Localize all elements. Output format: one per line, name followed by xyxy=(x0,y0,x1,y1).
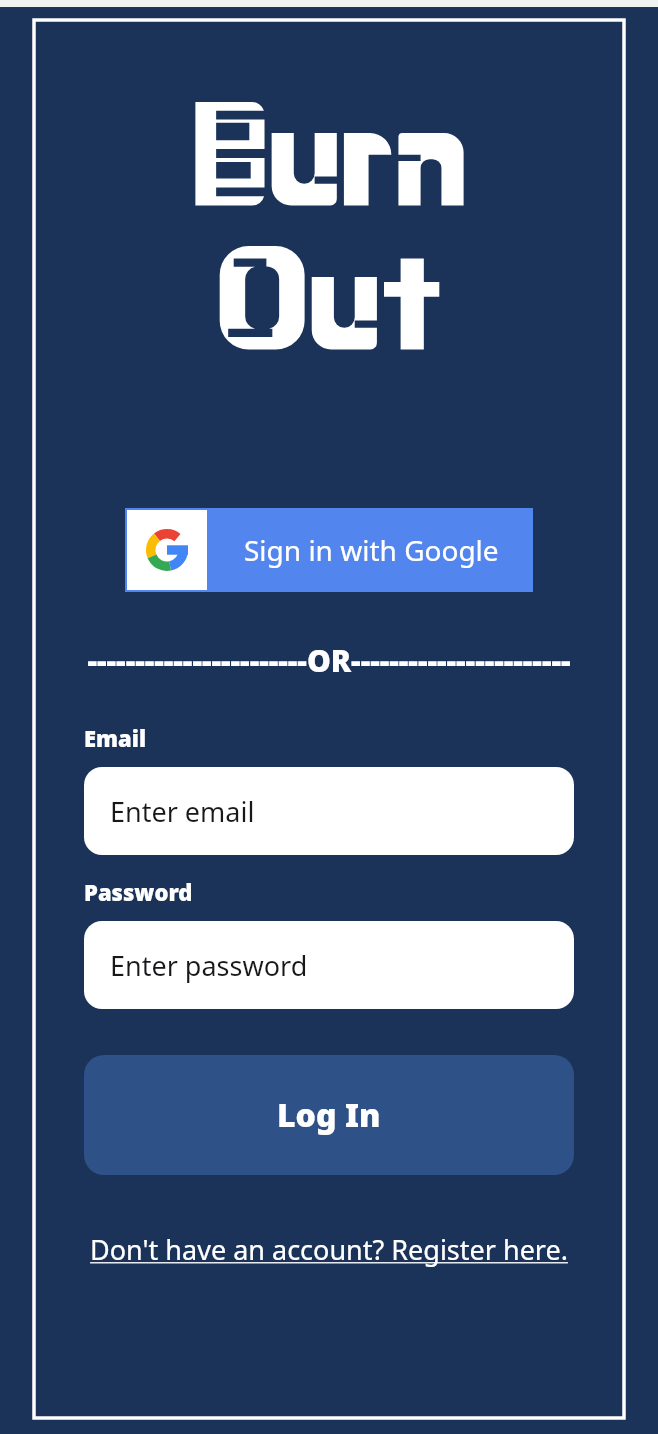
button[interactable]: Don't have an account? Register here. xyxy=(0,1231,658,1268)
button[interactable]: Enter password xyxy=(84,921,574,1009)
staticText: Sign in with Google xyxy=(244,531,499,569)
staticText: Don't have an account? Register here. xyxy=(90,1231,568,1268)
button[interactable]: Log In xyxy=(84,1055,574,1175)
staticText: Log In xyxy=(277,1093,381,1137)
button[interactable]: Enter email xyxy=(84,767,574,855)
staticText: Enter email xyxy=(110,793,255,830)
button[interactable]: Sign in with Google xyxy=(125,508,533,592)
staticText: Password xyxy=(84,877,193,907)
staticText: Email xyxy=(84,723,147,753)
staticText: -----------------------OR---------------… xyxy=(87,640,571,681)
staticText: Enter password xyxy=(110,947,308,984)
